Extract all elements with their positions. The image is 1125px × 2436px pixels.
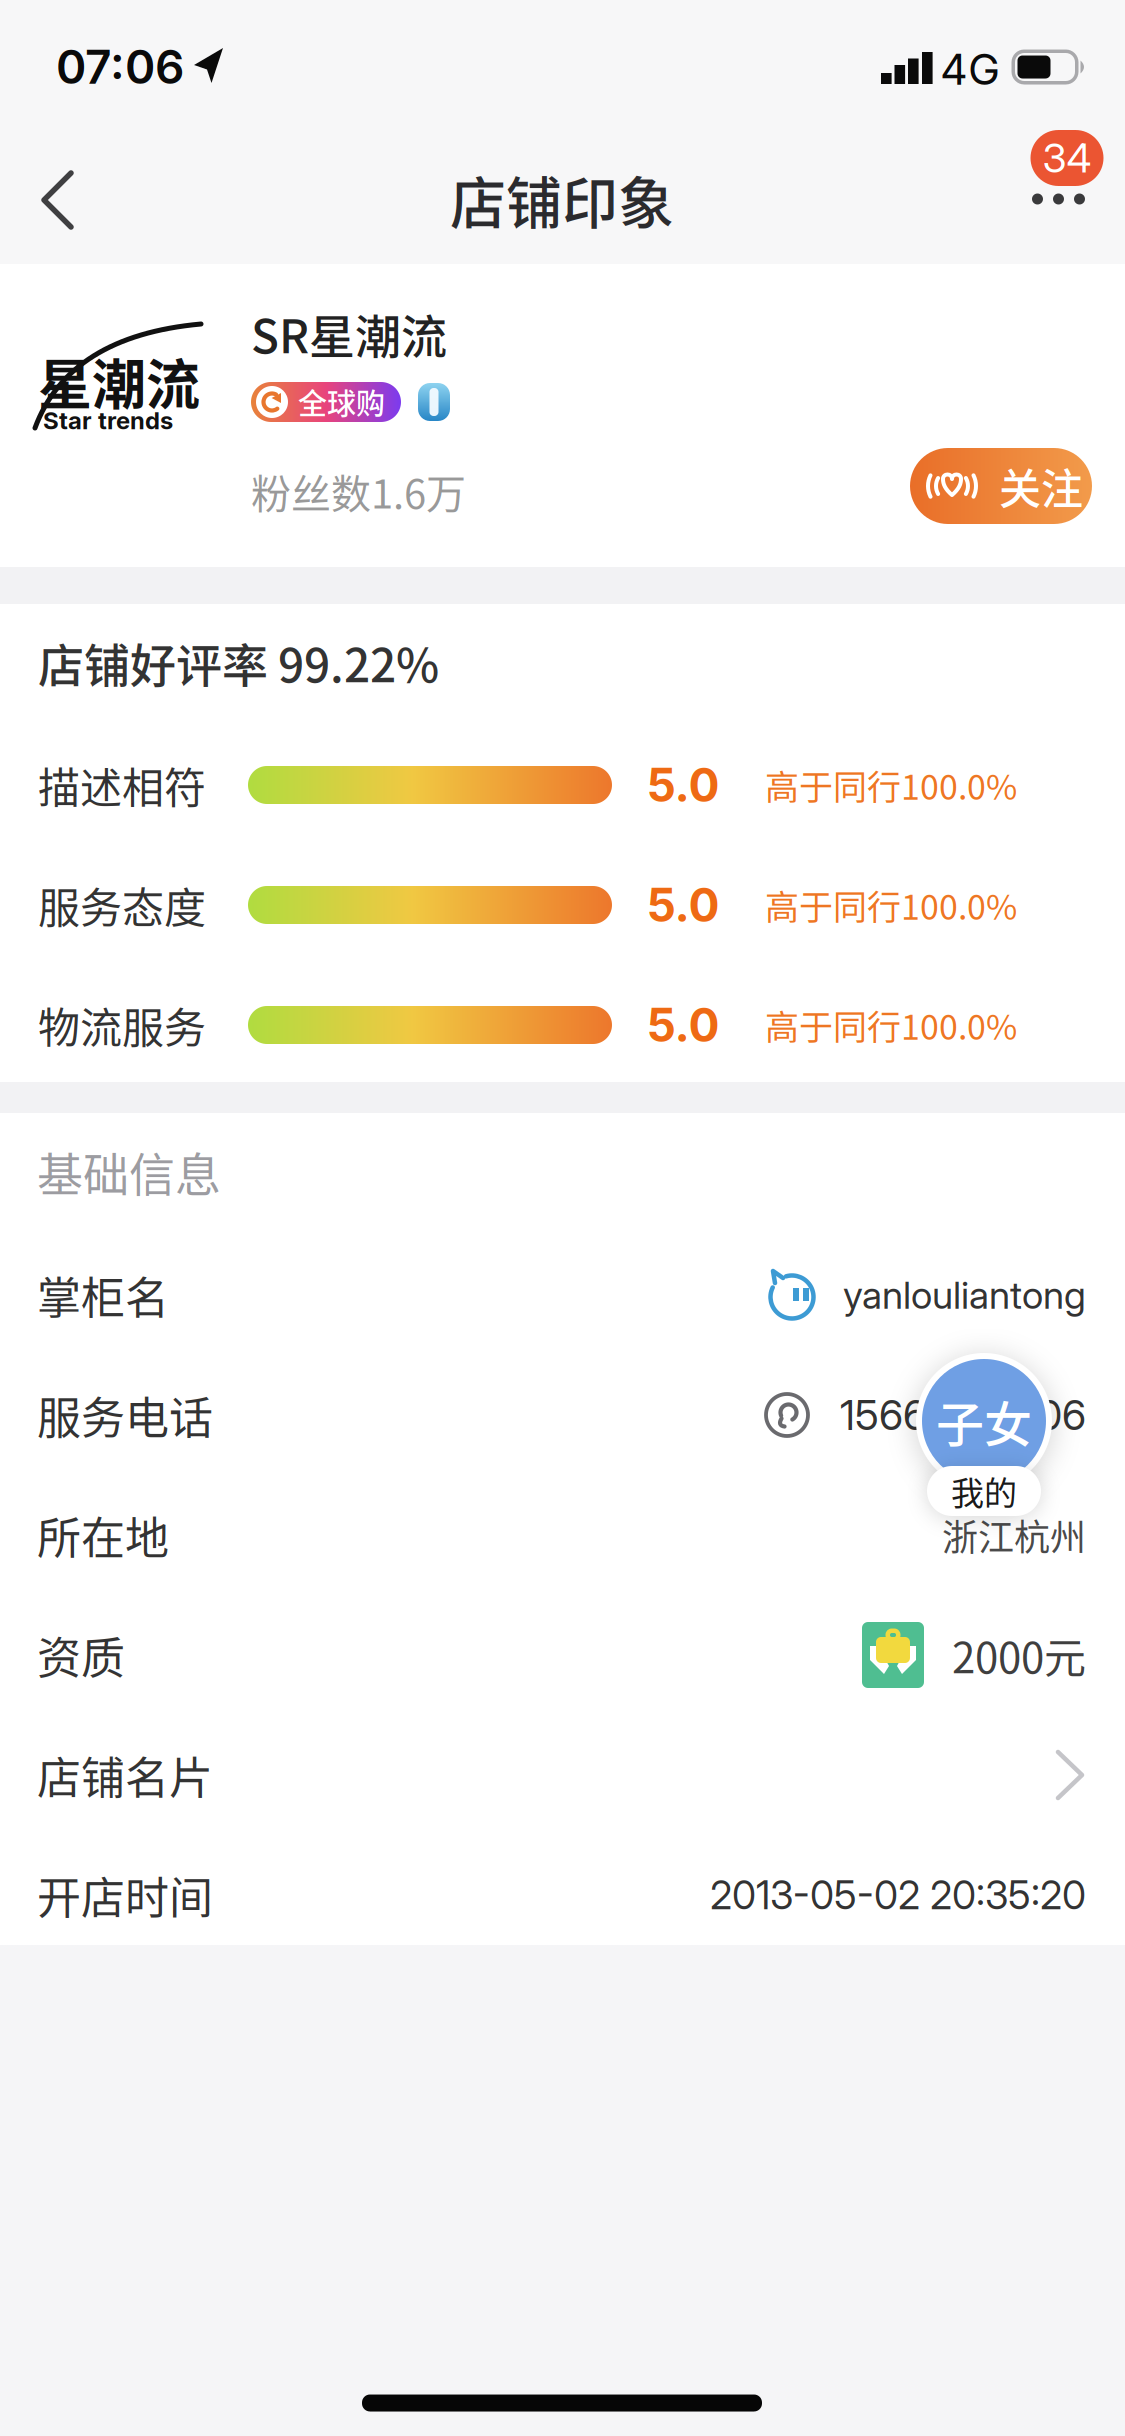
staticText: 2000元 — [952, 1625, 1086, 1685]
staticText: 高于同行100.0% — [765, 880, 1017, 930]
staticText: 全球购 — [298, 381, 385, 423]
staticText: 所在地 — [37, 1503, 169, 1567]
staticText: 星潮流 — [38, 342, 200, 420]
staticText: 店铺印象 — [450, 158, 674, 240]
staticText: 5.0 — [646, 877, 719, 933]
staticText: 店铺名片 — [37, 1743, 213, 1807]
staticText: 掌柜名 — [37, 1263, 169, 1327]
staticText: 07:06 — [56, 39, 184, 95]
staticText: 浙江杭州 — [942, 1509, 1086, 1561]
staticText: 我的 — [951, 1467, 1017, 1515]
button[interactable]: 店铺名片 — [0, 1715, 1125, 1835]
staticText: 服务态度 — [38, 875, 206, 935]
staticText: 2013-05-02 20:35:20 — [710, 1871, 1086, 1919]
staticText: SR星潮流 — [251, 300, 447, 367]
staticText: yanlouliantong — [843, 1272, 1086, 1318]
staticText: 描述相符 — [38, 755, 206, 815]
staticText: 子女 — [936, 1386, 1032, 1456]
button[interactable]: Back — [27, 156, 89, 244]
staticText: 物流服务 — [38, 995, 206, 1055]
staticText: 15667130906 — [840, 1390, 1086, 1440]
staticText: 基础信息 — [37, 1138, 221, 1205]
staticText: 高于同行100.0% — [765, 760, 1017, 810]
button[interactable]: 掌柜名 — [0, 1235, 1125, 1355]
button[interactable]: 服务电话 — [0, 1355, 1125, 1475]
staticText: 34 — [1042, 134, 1091, 182]
staticText: Star trends — [43, 406, 173, 435]
button[interactable]: 子女 — [916, 1353, 1052, 1489]
staticText: 粉丝数1.6万 — [251, 462, 466, 520]
button[interactable]: More — [1020, 181, 1097, 216]
staticText: 店铺好评率 99.22% — [38, 629, 439, 696]
staticText: 4G — [940, 43, 1000, 95]
button[interactable]: 我的 — [927, 1466, 1041, 1516]
staticText: 高于同行100.0% — [765, 1000, 1017, 1050]
staticText: 开店时间 — [37, 1863, 213, 1927]
staticText: 5.0 — [646, 997, 719, 1053]
staticText: 服务电话 — [37, 1383, 213, 1447]
staticText: 资质 — [37, 1623, 125, 1687]
staticText: 关注 — [999, 456, 1083, 516]
button[interactable]: 关注 — [910, 448, 1092, 524]
staticText: 5.0 — [646, 757, 719, 813]
